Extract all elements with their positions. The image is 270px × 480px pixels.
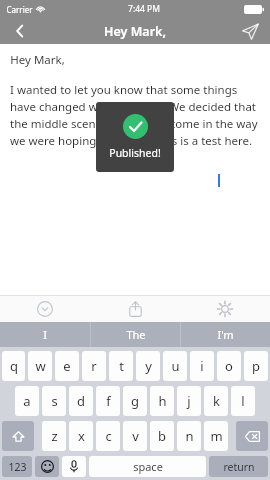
button[interactable]: I'm [181, 322, 270, 347]
button[interactable]: o [217, 351, 241, 381]
staticText: j [187, 392, 191, 410]
staticText: p [252, 357, 260, 375]
staticText: s [51, 392, 58, 410]
staticText: I'm [217, 327, 234, 342]
button[interactable]: Share [90, 295, 180, 322]
button[interactable]: q [2, 351, 25, 381]
button[interactable]: l [231, 386, 255, 416]
staticText: q [10, 357, 18, 375]
staticText: Hey Mark, [10, 52, 65, 68]
staticText: h [158, 392, 167, 410]
button[interactable]: t [109, 351, 133, 381]
button[interactable]: z [42, 421, 66, 451]
button[interactable]: Delete [236, 421, 268, 451]
staticText: return [223, 460, 255, 474]
button[interactable]: u [163, 351, 187, 381]
button[interactable]: I [0, 322, 90, 347]
button[interactable]: i [190, 351, 214, 381]
button[interactable]: Hide keyboard [0, 295, 90, 322]
staticText: e [63, 357, 71, 375]
button[interactable]: j [177, 386, 201, 416]
button[interactable]: s [42, 386, 66, 416]
staticText: Hey Mark, [104, 23, 166, 40]
staticText: c [105, 427, 112, 445]
button[interactable]: space [89, 456, 206, 477]
staticText: l [241, 392, 245, 410]
staticText: n [185, 427, 194, 445]
button[interactable]: Send [230, 18, 270, 44]
staticText: I [43, 327, 47, 342]
button[interactable]: p [244, 351, 268, 381]
staticText: 7:44 PM [128, 3, 160, 15]
staticText: Carrier [6, 4, 33, 15]
button[interactable]: d [69, 386, 93, 416]
button[interactable]: h [150, 386, 174, 416]
staticText: k [213, 392, 220, 410]
staticText: i [200, 357, 204, 375]
staticText: I wanted to let you know that some thing… [10, 82, 262, 149]
button[interactable]: b [150, 421, 174, 451]
staticText: r [91, 357, 97, 375]
button[interactable]: a [15, 386, 39, 416]
button[interactable]: r [82, 351, 106, 381]
staticText: space [133, 459, 163, 474]
button[interactable]: f [96, 386, 120, 416]
button[interactable]: y [136, 351, 160, 381]
button[interactable]: Shift [2, 421, 34, 451]
staticText: The [126, 327, 146, 342]
staticText: z [51, 427, 58, 445]
staticText: d [77, 392, 85, 410]
staticText: w [35, 357, 46, 375]
button[interactable]: x [69, 421, 93, 451]
staticText: y [145, 357, 152, 375]
staticText: b [158, 427, 166, 445]
button[interactable]: 123 [2, 456, 32, 477]
button[interactable]: Settings [180, 295, 270, 322]
button[interactable]: m [204, 421, 228, 451]
button[interactable]: g [123, 386, 147, 416]
staticText: u [171, 357, 180, 375]
button[interactable]: Dictate [62, 456, 86, 477]
staticText: a [23, 392, 31, 410]
button[interactable]: w [28, 351, 52, 381]
button[interactable]: return [209, 456, 268, 477]
staticText: v [132, 427, 139, 445]
staticText: t [119, 357, 124, 375]
button[interactable]: Emoji [35, 456, 59, 477]
button[interactable]: Back [0, 18, 40, 44]
button[interactable]: k [204, 386, 228, 416]
button[interactable]: n [177, 421, 201, 451]
button[interactable]: e [55, 351, 79, 381]
staticText: f [106, 392, 111, 410]
staticText: g [131, 392, 139, 410]
button[interactable]: v [123, 421, 147, 451]
staticText: m [210, 427, 223, 445]
button[interactable]: c [96, 421, 120, 451]
staticText: Published! [109, 146, 161, 160]
staticText: x [78, 427, 85, 445]
staticText: o [225, 357, 233, 375]
button[interactable]: The [91, 322, 180, 347]
staticText: 123 [8, 460, 27, 474]
